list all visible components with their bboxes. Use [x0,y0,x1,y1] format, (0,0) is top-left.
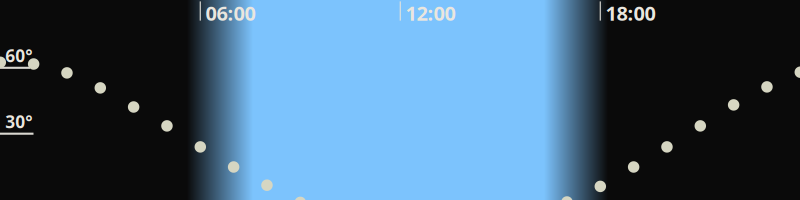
staticText: 12:00 [405,0,455,26]
staticText: 30° [5,110,32,133]
staticText: 60° [5,44,32,67]
staticText: 18:00 [605,0,655,26]
staticText: 06:00 [205,0,255,26]
